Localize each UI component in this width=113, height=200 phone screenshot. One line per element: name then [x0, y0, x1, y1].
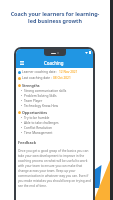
button[interactable]: Problem Solving Skills: [21, 93, 91, 98]
staticText: Once you get a good grasp of the basics …: [18, 149, 91, 188]
button[interactable]: Strong communication skills: [21, 88, 91, 93]
staticText: Coach your learners for learning-led bus…: [10, 10, 100, 25]
button[interactable]: Able to take challenges: [21, 120, 91, 125]
button[interactable]: Try to be humble: [21, 115, 91, 120]
staticText: Opportunities: [22, 110, 48, 115]
staticText: Coaching: [44, 60, 64, 66]
staticText: Feedback: [18, 140, 37, 145]
staticText: Strengths: [22, 83, 40, 88]
button[interactable]: Open navigation menu: [19, 60, 25, 66]
staticText: Try to be humble: [24, 116, 50, 120]
staticText: Able to take challenges: [24, 121, 59, 125]
staticText: Learner coaching date :: [22, 70, 58, 74]
staticText: Team Player: [24, 99, 43, 103]
button[interactable]: Technology Know-How: [21, 103, 91, 108]
staticText: Strong communication skills: [24, 89, 67, 93]
staticText: Last coaching date :: [22, 76, 52, 80]
button[interactable]: Team Player: [21, 98, 91, 103]
staticText: 08 Oct 2021: [53, 76, 71, 80]
staticText: Time Management: [24, 131, 53, 135]
staticText: Technology Know-How: [24, 104, 58, 108]
staticText: Problem Solving Skills: [24, 94, 57, 98]
staticText: Conflict Resolution: [24, 126, 53, 130]
button[interactable]: Conflict Resolution: [21, 125, 91, 130]
button[interactable]: Time Management: [21, 130, 91, 135]
staticText: 12 Nov 2021: [59, 70, 78, 74]
